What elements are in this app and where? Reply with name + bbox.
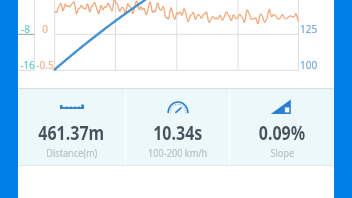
staticText: 0.09%	[259, 119, 305, 146]
staticText: -0.5	[35, 58, 55, 72]
staticText: -8	[18, 22, 34, 36]
staticText: Slope	[270, 145, 295, 160]
button[interactable]: Slope	[230, 89, 334, 165]
button[interactable]: Distance	[18, 89, 125, 165]
staticText: -16	[19, 58, 36, 72]
staticText: 461.37m	[38, 119, 105, 146]
staticText: 10.34s	[153, 119, 203, 146]
staticText: 100	[300, 58, 324, 72]
staticText: Distance(m)	[46, 145, 98, 160]
staticText: 125	[300, 22, 324, 36]
button[interactable]: Acceleration time	[126, 89, 229, 165]
staticText: 100-200 km/h	[148, 145, 208, 160]
staticText: 0	[35, 22, 55, 36]
